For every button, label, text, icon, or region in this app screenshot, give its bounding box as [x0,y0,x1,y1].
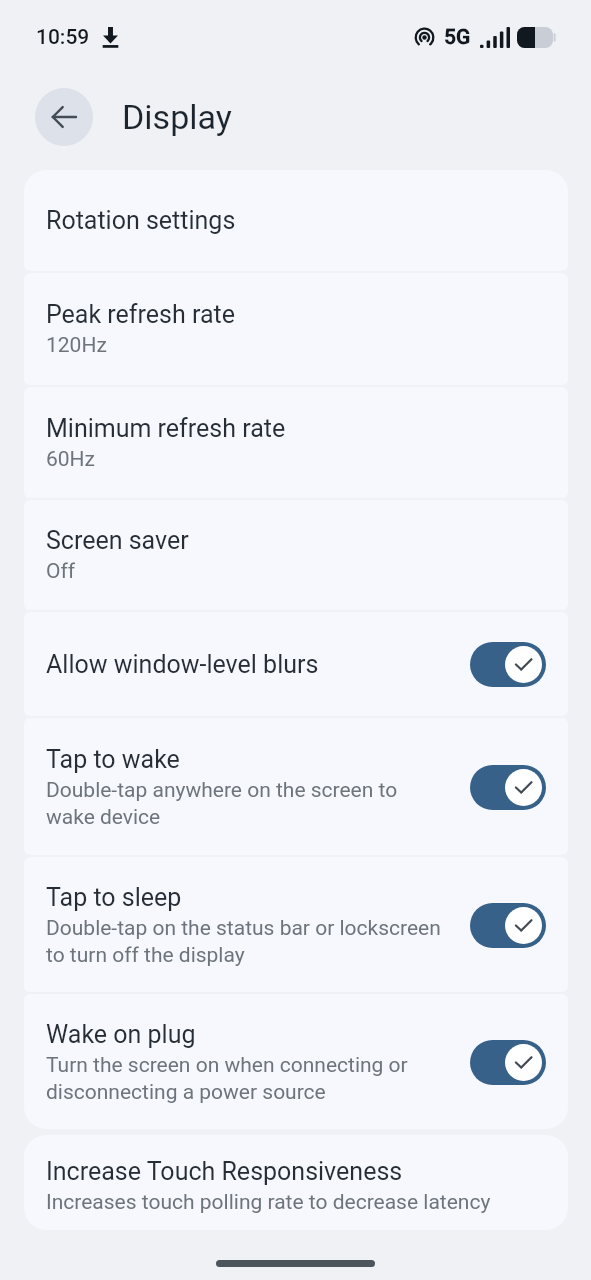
button[interactable]: Minimum refresh rate [24,387,568,498]
button[interactable]: Toggle on [470,903,546,948]
button[interactable]: Tap to wake [24,718,568,855]
staticText: Screen saver [46,526,189,555]
staticText: Display [122,97,232,137]
staticText: Tap to sleep [46,883,182,912]
button[interactable]: Toggle on [470,765,546,810]
staticText: Minimum refresh rate [46,414,286,443]
staticText: Increase Touch Responsiveness [46,1157,403,1186]
staticText: Double-tap anywhere on the screen to wak… [46,778,398,829]
staticText: Increases touch polling rate to decrease… [46,1190,491,1215]
staticText: 60Hz [46,447,96,472]
button[interactable]: Rotation settings [24,170,568,271]
button[interactable]: Toggle on [470,1040,546,1085]
button[interactable]: Wake on plug [24,994,568,1129]
button[interactable]: Peak refresh rate [24,273,568,385]
button[interactable]: Tap to sleep [24,857,568,992]
staticText: Rotation settings [46,206,236,235]
button[interactable]: Allow window-level blurs [24,612,568,716]
staticText: Off [46,559,76,584]
staticText: Peak refresh rate [46,300,235,329]
button[interactable]: Back [35,88,93,146]
staticText: 120Hz [46,333,107,358]
staticText: Wake on plug [46,1020,196,1049]
staticText: Turn the screen on when connecting or di… [46,1053,408,1104]
staticText: Double-tap on the status bar or lockscre… [46,916,441,967]
staticText: Allow window-level blurs [46,650,319,679]
button[interactable]: Screen saver [24,500,568,610]
staticText: 10:59 [36,25,90,50]
button[interactable]: Increase Touch Responsiveness [24,1135,568,1230]
staticText: 5G [444,25,471,50]
button[interactable]: Toggle on [470,642,546,687]
staticText: Tap to wake [46,745,180,774]
